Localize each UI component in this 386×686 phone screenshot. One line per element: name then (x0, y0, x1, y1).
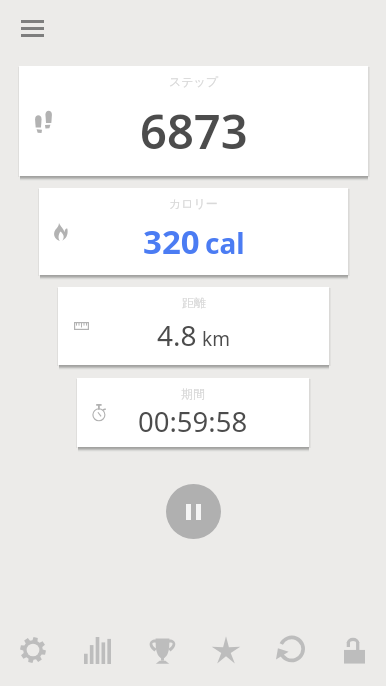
button[interactable]: Menu (11, 7, 53, 49)
button[interactable]: カロリー (39, 188, 348, 275)
staticText: カロリー (169, 196, 218, 211)
staticText: 6873 (140, 99, 248, 163)
button[interactable]: Reset (258, 618, 322, 676)
staticText: 00:59:58 (138, 403, 248, 440)
button[interactable]: Settings (0, 618, 65, 676)
staticText: cal (205, 224, 245, 262)
button[interactable]: Pause (166, 484, 221, 539)
staticText: 320 (143, 219, 200, 264)
staticText: 期間 (181, 386, 205, 401)
staticText: 距離 (182, 295, 206, 310)
button[interactable]: 期間 (77, 378, 309, 447)
button[interactable]: Favorites (194, 618, 258, 676)
staticText: ステップ (169, 74, 219, 89)
staticText: km (202, 326, 230, 352)
staticText: 4.8 (157, 316, 197, 354)
button[interactable]: Achievements (130, 618, 194, 676)
button[interactable]: ステップ (19, 66, 368, 176)
button[interactable]: 距離 (58, 287, 329, 365)
button[interactable]: Statistics (65, 618, 130, 676)
button[interactable]: Lock (322, 618, 386, 676)
